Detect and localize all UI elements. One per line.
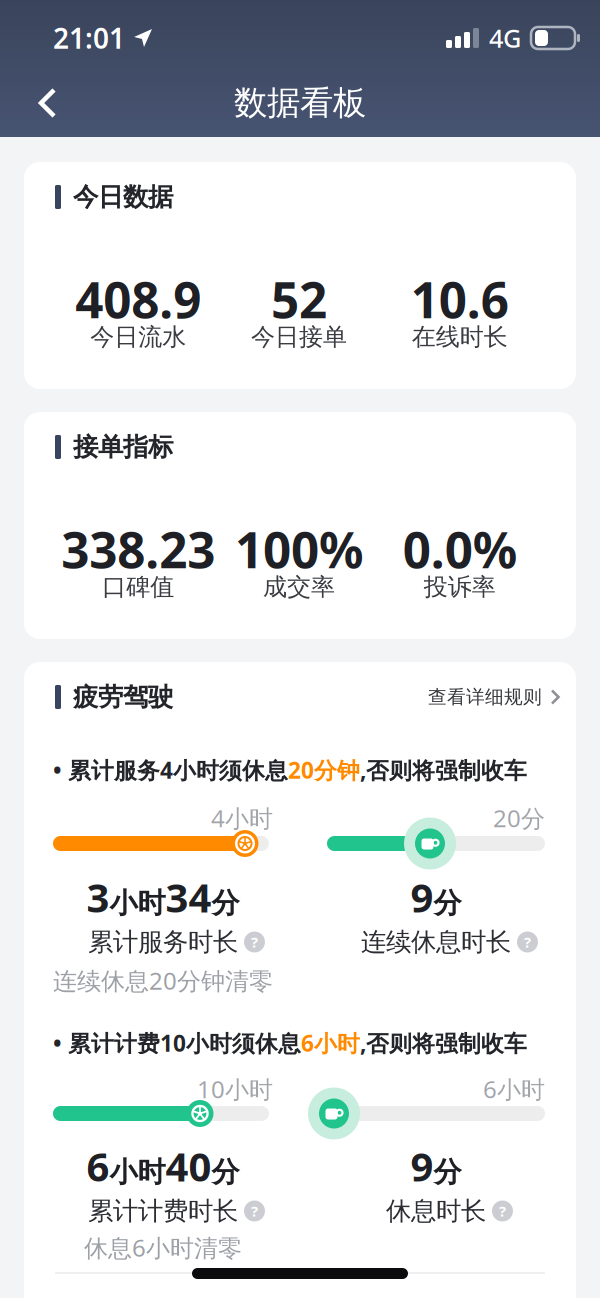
staticText: 今日接单 [251,322,347,352]
staticText: 今日流水 [90,322,186,352]
staticText: 分 [211,886,239,920]
staticText: ? [524,932,531,952]
staticText: 分 [433,1155,461,1189]
button[interactable]: ? [244,1200,265,1221]
staticText: 小时 [109,886,165,920]
staticText: 投诉率 [424,572,496,602]
staticText: 口碑值 [102,572,174,602]
staticText: 分 [211,1155,239,1189]
staticText: 20分钟 [288,755,360,785]
staticText: 0.0% [403,516,517,582]
staticText: • 累计服务4小时须休息 [53,755,288,785]
button[interactable]: ? [244,931,265,952]
staticText: • 累计计费10小时须休息 [53,1028,301,1058]
staticText: 34 [165,870,211,923]
staticText: 10小时 [197,1073,273,1105]
staticText: 338.23 [61,516,215,582]
button[interactable] [0,88,78,118]
staticText: 9 [410,870,433,923]
staticText: 今日数据 [73,181,173,212]
staticText: ,否则将强制收车 [360,755,527,785]
staticText: 4G [489,21,521,55]
staticText: 累计计费时长 [88,1195,238,1226]
staticText: 在线时长 [412,322,508,352]
staticText: ? [499,1201,506,1221]
staticText: 连续休息时长 [361,926,511,957]
staticText: 小时 [109,1155,165,1189]
staticText: 4小时 [211,802,273,834]
staticText: 接单指标 [73,431,173,462]
staticText: 疲劳驾驶 [73,681,173,712]
staticText: ,否则将强制收车 [360,1028,527,1058]
staticText: 6 [86,1139,109,1192]
staticText: 数据看板 [234,82,366,123]
staticText: 408.9 [75,266,201,332]
staticText: 9 [410,1139,433,1192]
staticText: 10.6 [411,266,509,332]
staticText: 查看详细规则 [428,685,542,708]
button[interactable]: ? [492,1200,513,1221]
staticText: 休息时长 [386,1195,486,1226]
staticText: 休息6小时清零 [84,1232,242,1263]
staticText: ? [251,1201,258,1221]
staticText: 3 [86,870,109,923]
button[interactable]: ? [517,931,538,952]
staticText: 成交率 [263,572,335,602]
button[interactable]: 查看详细规则 [428,685,560,708]
staticText: 100% [235,516,363,582]
staticText: 累计服务时长 [88,926,238,957]
staticText: 21:01 [53,19,125,57]
staticText: 连续休息20分钟清零 [53,965,273,996]
staticText: 40 [165,1139,211,1192]
staticText: 6小时 [301,1028,360,1058]
staticText: 52 [271,266,327,332]
staticText: 20分 [493,802,545,834]
staticText: ? [251,932,258,952]
staticText: 6小时 [483,1073,545,1105]
staticText: 分 [433,886,461,920]
